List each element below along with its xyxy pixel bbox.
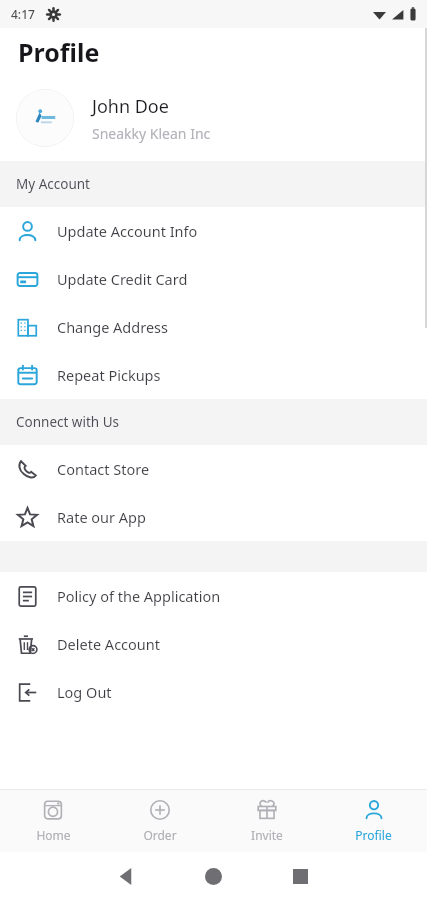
staticText: Policy of the Application bbox=[57, 586, 221, 606]
staticText: John Doe bbox=[92, 94, 169, 119]
staticText: Update Account Info bbox=[57, 221, 198, 241]
staticText: Order bbox=[143, 827, 177, 843]
button[interactable]: John Doe bbox=[0, 75, 427, 161]
button[interactable]: Delete Account bbox=[0, 620, 427, 668]
staticText: Connect with Us bbox=[16, 413, 120, 431]
staticText: Profile bbox=[18, 35, 100, 69]
staticText: Change Address bbox=[57, 317, 168, 337]
staticText: My Account bbox=[16, 175, 90, 193]
staticText: Invite bbox=[251, 827, 283, 843]
staticText: Rate our App bbox=[57, 507, 146, 527]
button[interactable]: Order bbox=[106, 799, 213, 843]
staticText: Home bbox=[36, 827, 71, 843]
button[interactable]: Policy of the Application bbox=[0, 572, 427, 620]
staticText: 4:17 bbox=[11, 6, 35, 22]
button[interactable]: Profile bbox=[320, 799, 427, 843]
staticText: Delete Account bbox=[57, 634, 160, 654]
button[interactable]: Contact Store bbox=[0, 445, 427, 493]
button[interactable]: Log Out bbox=[0, 668, 427, 716]
staticText: Log Out bbox=[57, 682, 112, 702]
staticText: Update Credit Card bbox=[57, 269, 188, 289]
button[interactable]: Repeat Pickups bbox=[0, 351, 427, 399]
staticText: Repeat Pickups bbox=[57, 365, 161, 385]
button[interactable]: Invite bbox=[213, 799, 320, 843]
staticText: Profile bbox=[355, 827, 392, 843]
button[interactable]: Change Address bbox=[0, 303, 427, 351]
button[interactable]: Update Credit Card bbox=[0, 255, 427, 303]
button[interactable]: Rate our App bbox=[0, 493, 427, 541]
staticText: Sneakky Klean Inc bbox=[92, 124, 211, 143]
staticText: Contact Store bbox=[57, 459, 150, 479]
button[interactable]: Update Account Info bbox=[0, 207, 427, 255]
button[interactable]: Home bbox=[0, 799, 106, 843]
